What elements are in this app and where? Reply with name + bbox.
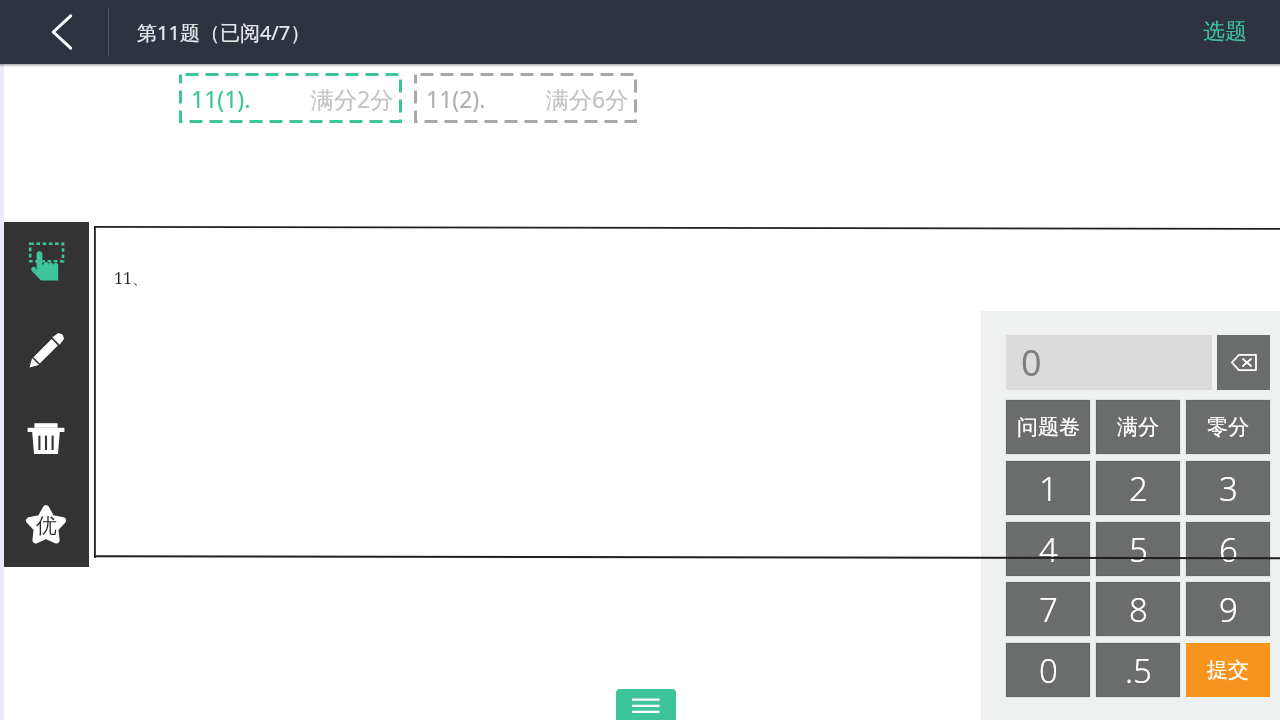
button[interactable]: Delete <box>16 408 76 468</box>
staticText: 6 <box>1219 527 1238 572</box>
button[interactable]: 1 <box>1006 461 1090 515</box>
staticText: 8 <box>1129 587 1148 632</box>
staticText: 2 <box>1129 466 1148 511</box>
button[interactable]: .5 <box>1096 643 1180 697</box>
button[interactable]: 9 <box>1186 582 1270 636</box>
button[interactable]: 满分 <box>1096 400 1180 454</box>
staticText: 选题 <box>1203 18 1247 46</box>
button[interactable]: Select area <box>16 233 76 293</box>
button[interactable]: Menu <box>616 689 676 720</box>
staticText: 提交 <box>1207 657 1249 683</box>
staticText: 11(2). <box>426 83 486 114</box>
button[interactable]: 0 <box>1006 643 1090 697</box>
button[interactable]: 5 <box>1096 522 1180 576</box>
staticText: 优 <box>36 513 57 539</box>
staticText: 满分2分 <box>311 83 394 114</box>
staticText: 11(1). <box>191 83 251 114</box>
staticText: 4 <box>1039 527 1058 572</box>
staticText: 问题卷 <box>1017 414 1080 440</box>
button[interactable]: 提交 <box>1186 643 1270 697</box>
button[interactable]: Pen <box>16 321 76 381</box>
staticText: 3 <box>1219 466 1238 511</box>
staticText: 零分 <box>1207 414 1249 440</box>
button[interactable]: Back <box>36 6 88 58</box>
staticText: 5 <box>1129 527 1148 572</box>
staticText: 7 <box>1039 587 1058 632</box>
button[interactable]: 零分 <box>1186 400 1270 454</box>
button[interactable]: 问题卷 <box>1006 400 1090 454</box>
staticText: 满分6分 <box>546 83 629 114</box>
button[interactable]: 11(2). <box>414 73 637 123</box>
button[interactable]: 7 <box>1006 582 1090 636</box>
staticText: 0 <box>1039 648 1058 693</box>
staticText: 满分 <box>1117 414 1159 440</box>
button[interactable]: Backspace <box>1217 335 1270 390</box>
button[interactable]: Excellent <box>16 494 76 554</box>
staticText: 1 <box>1039 466 1058 511</box>
button[interactable]: 选题 <box>1193 10 1257 54</box>
staticText: .5 <box>1125 648 1152 693</box>
button[interactable]: 8 <box>1096 582 1180 636</box>
button[interactable]: 2 <box>1096 461 1180 515</box>
staticText: 11、 <box>114 267 148 289</box>
staticText: 0 <box>1021 338 1042 387</box>
button[interactable]: 6 <box>1186 522 1270 576</box>
button[interactable]: 3 <box>1186 461 1270 515</box>
button[interactable]: 4 <box>1006 522 1090 576</box>
staticText: 第11题（已阅4/7） <box>137 19 311 46</box>
button[interactable]: 11(1). <box>179 73 402 123</box>
staticText: 9 <box>1219 587 1238 632</box>
